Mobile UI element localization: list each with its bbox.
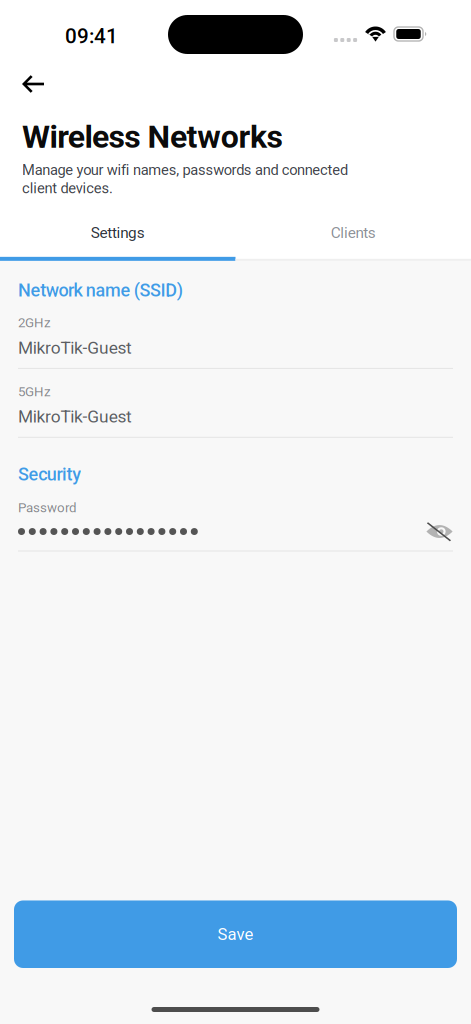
staticText: 2GHz bbox=[18, 315, 51, 330]
staticText: Manage your wifi names, passwords and co… bbox=[22, 161, 348, 179]
staticText: Password bbox=[18, 500, 77, 515]
staticText: Settings bbox=[91, 224, 145, 242]
staticText: Security bbox=[18, 464, 81, 485]
staticText: Save bbox=[217, 924, 253, 944]
staticText: Clients bbox=[331, 224, 376, 242]
button[interactable]: Clients bbox=[235, 218, 471, 257]
staticText: MikroTik-Guest bbox=[18, 406, 132, 427]
button[interactable]: Show password bbox=[426, 522, 453, 541]
staticText: 5GHz bbox=[18, 384, 51, 399]
staticText: 09:41 bbox=[65, 24, 118, 48]
button[interactable]: Back bbox=[0, 62, 63, 107]
staticText: client devices. bbox=[22, 180, 113, 197]
staticText: Network name (SSID) bbox=[18, 280, 183, 301]
staticText: Wireless Networks bbox=[22, 118, 283, 155]
staticText: MikroTik-Guest bbox=[18, 338, 132, 358]
button[interactable]: Save bbox=[14, 900, 457, 968]
button[interactable]: Settings bbox=[0, 218, 235, 257]
